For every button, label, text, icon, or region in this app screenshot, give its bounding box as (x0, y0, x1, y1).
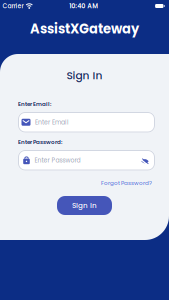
staticText: AssistXGateway (30, 20, 139, 38)
staticText: Carrier (2, 2, 23, 10)
staticText: Enter Email (35, 118, 69, 127)
staticText: Enter Email: (18, 100, 51, 108)
staticText: Sign In (66, 68, 102, 83)
button[interactable]: Forgot Password? (101, 179, 152, 186)
staticText: Enter Password (34, 156, 80, 165)
staticText: Enter Password: (18, 138, 62, 146)
staticText: Sign in (72, 200, 97, 211)
button[interactable]: Enter Email (18, 112, 155, 132)
button[interactable]: Sign in (57, 196, 112, 215)
button[interactable]: Enter Password (18, 150, 155, 170)
button[interactable]: Show password (141, 158, 149, 165)
staticText: Forgot Password? (101, 179, 152, 187)
staticText: 10:40 AM (69, 1, 98, 10)
